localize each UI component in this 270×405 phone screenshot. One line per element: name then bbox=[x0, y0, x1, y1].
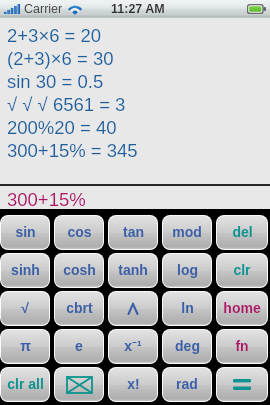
staticText: √ √ √ 6561 = 3 bbox=[7, 94, 126, 115]
staticText: deg bbox=[175, 338, 200, 354]
staticText: rad bbox=[176, 376, 198, 392]
button[interactable]: log bbox=[163, 254, 211, 287]
staticText: 300+15% = 345 bbox=[7, 140, 138, 161]
staticText: 11:27 AM bbox=[111, 2, 165, 16]
button[interactable]: ln bbox=[163, 292, 211, 325]
button[interactable]: π bbox=[1, 330, 49, 363]
staticText: mod bbox=[172, 224, 202, 240]
staticText: fn bbox=[235, 338, 249, 354]
staticText: 200%20 = 40 bbox=[7, 117, 117, 138]
button[interactable]: tanh bbox=[109, 254, 157, 287]
staticText: π bbox=[20, 338, 31, 354]
staticText: x⁻¹ bbox=[124, 336, 142, 355]
button[interactable]: x! bbox=[109, 368, 157, 401]
button[interactable]: sinh bbox=[1, 254, 49, 287]
button[interactable]: fn bbox=[217, 330, 267, 363]
staticText: Carrier bbox=[24, 2, 63, 16]
staticText: clr bbox=[233, 262, 251, 278]
button[interactable]: deg bbox=[163, 330, 211, 363]
staticText: cos bbox=[67, 224, 92, 240]
button[interactable]: tan bbox=[109, 216, 157, 249]
staticText: tan bbox=[123, 224, 144, 240]
staticText: home bbox=[223, 300, 261, 316]
button[interactable]: cosh bbox=[55, 254, 103, 287]
staticText: sinh bbox=[11, 262, 40, 278]
button[interactable]: rad bbox=[163, 368, 211, 401]
button[interactable]: clr bbox=[217, 254, 267, 287]
staticText: e bbox=[75, 338, 83, 354]
button[interactable]: Power bbox=[109, 292, 157, 325]
button[interactable]: e bbox=[55, 330, 103, 363]
button[interactable]: Equals bbox=[217, 368, 267, 401]
staticText: log bbox=[177, 262, 198, 278]
staticText: √ bbox=[21, 300, 29, 316]
staticText: clr all bbox=[7, 376, 44, 392]
button[interactable]: Mail result bbox=[55, 368, 103, 401]
staticText: tanh bbox=[118, 262, 148, 278]
button[interactable]: cos bbox=[55, 216, 103, 249]
button[interactable]: clr all bbox=[1, 368, 49, 401]
button[interactable]: cbrt bbox=[55, 292, 103, 325]
staticText: cosh bbox=[63, 262, 96, 278]
staticText: sin bbox=[15, 224, 36, 240]
button[interactable]: mod bbox=[163, 216, 211, 249]
button[interactable]: sin bbox=[1, 216, 49, 249]
button[interactable]: del bbox=[217, 216, 267, 249]
staticText: (2+3)×6 = 30 bbox=[7, 48, 114, 69]
button[interactable]: √ bbox=[1, 292, 49, 325]
button[interactable]: home bbox=[217, 292, 267, 325]
staticText: cbrt bbox=[66, 300, 93, 316]
button[interactable]: x⁻¹ bbox=[109, 330, 157, 363]
staticText: sin 30 = 0.5 bbox=[7, 71, 104, 92]
staticText: 2+3×6 = 20 bbox=[7, 25, 102, 46]
staticText: del bbox=[232, 224, 253, 240]
staticText: 300+15% bbox=[7, 189, 86, 210]
staticText: ln bbox=[181, 300, 194, 316]
staticText: x! bbox=[127, 376, 140, 392]
